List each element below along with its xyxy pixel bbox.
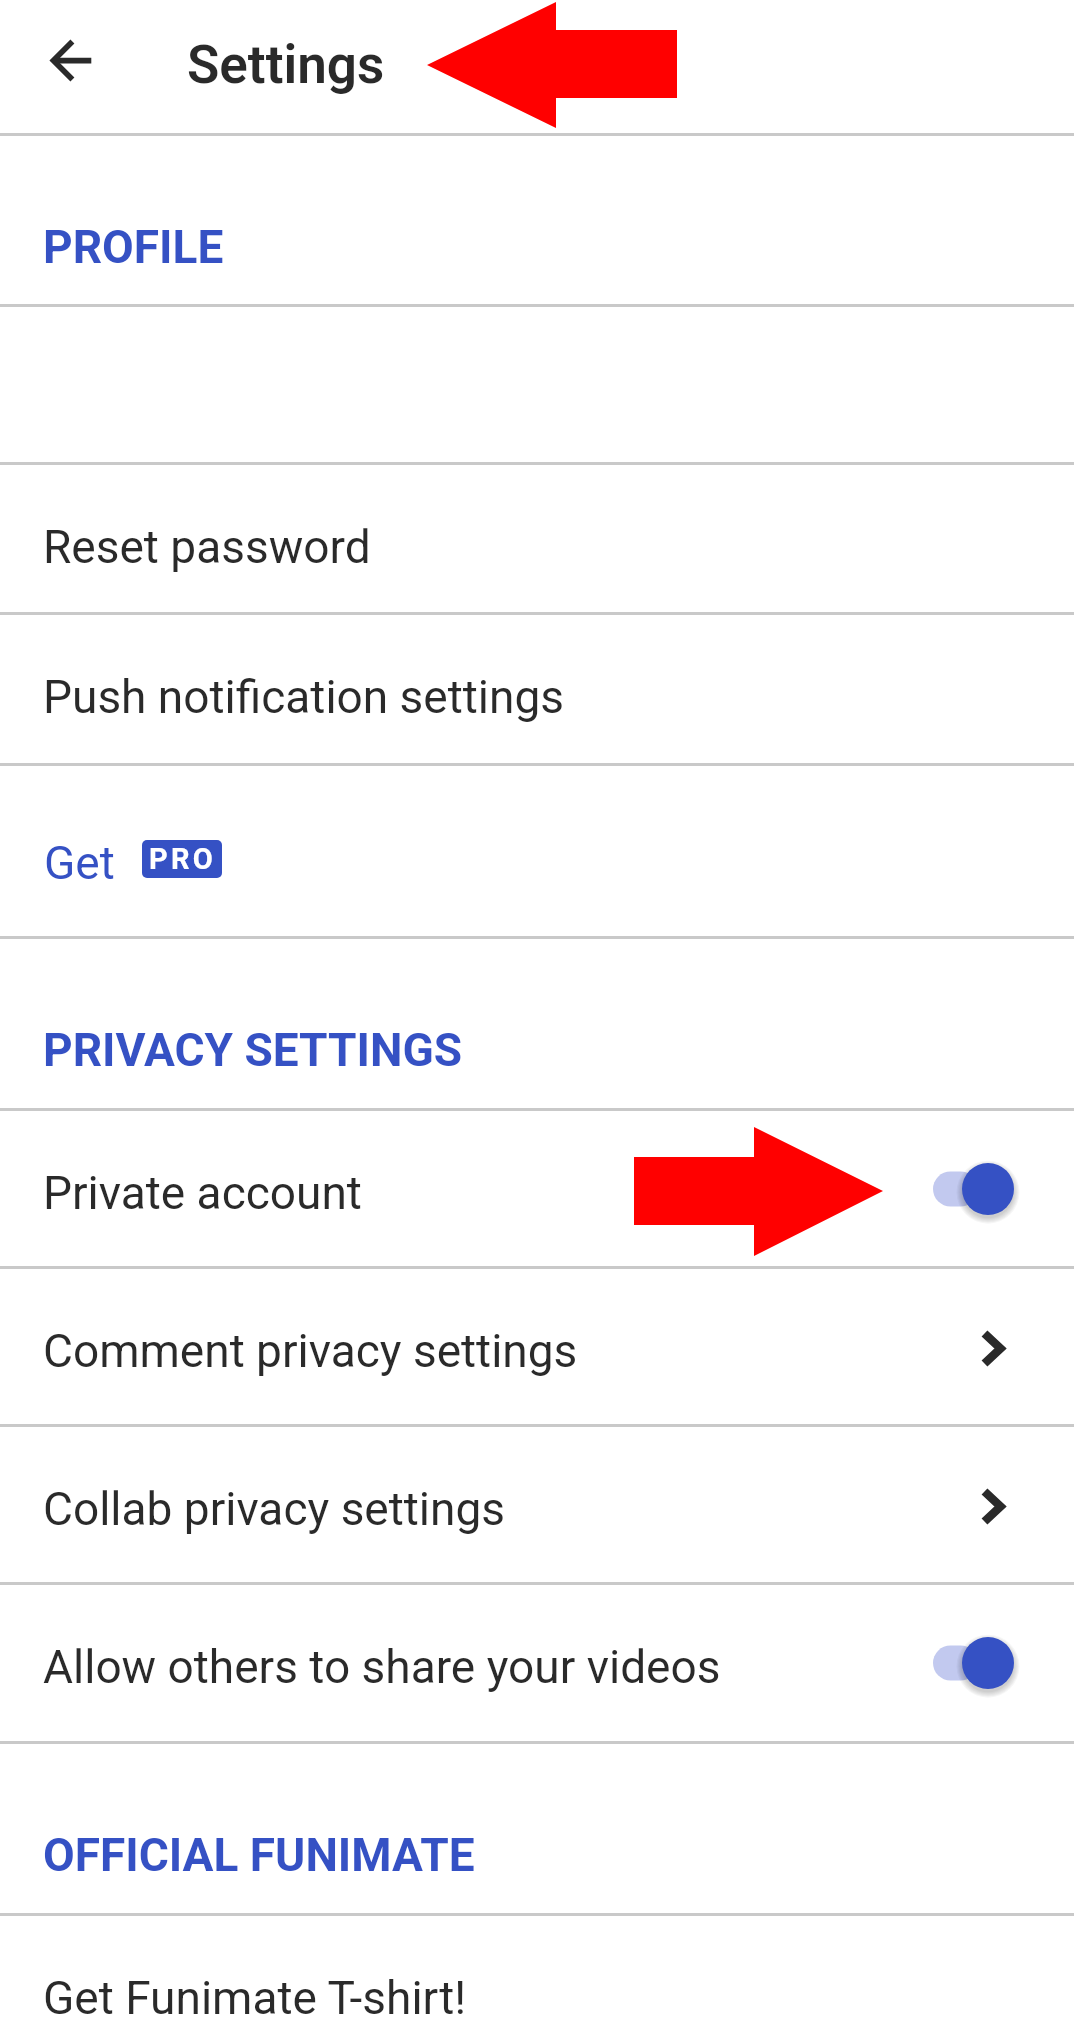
button[interactable]: Get Funimate T-shirt! xyxy=(0,1916,1074,2018)
button[interactable]: Reset password xyxy=(0,465,1074,612)
staticText: PRIVACY SETTINGS xyxy=(43,1023,463,1077)
staticText: Comment privacy settings xyxy=(43,1324,578,1378)
button[interactable]: Push notification settings xyxy=(0,615,1074,763)
staticText: Settings xyxy=(187,34,385,96)
staticText: Push notification settings xyxy=(43,670,565,724)
staticText: Reset password xyxy=(43,520,371,574)
staticText: Allow others to share your videos xyxy=(43,1640,721,1694)
button[interactable]: Private account xyxy=(914,1149,1074,1229)
button[interactable]: Comment privacy settings xyxy=(0,1269,1074,1424)
button[interactable]: Private account xyxy=(0,1111,1074,1266)
button[interactable]: Allow others to share your videos xyxy=(0,1585,1074,1741)
staticText: PRO xyxy=(149,842,216,876)
button[interactable]: Allow others to share your videos xyxy=(914,1623,1074,1703)
staticText: Private account xyxy=(43,1166,362,1220)
button[interactable]: Back xyxy=(20,24,110,98)
button[interactable]: Get xyxy=(0,766,1074,936)
staticText: Get Funimate T-shirt! xyxy=(43,1971,467,2018)
staticText: Collab privacy settings xyxy=(43,1482,506,1536)
staticText: PROFILE xyxy=(43,220,224,274)
button[interactable]: Collab privacy settings xyxy=(0,1427,1074,1582)
staticText: OFFICIAL FUNIMATE xyxy=(43,1828,475,1882)
staticText: Get xyxy=(44,836,115,890)
